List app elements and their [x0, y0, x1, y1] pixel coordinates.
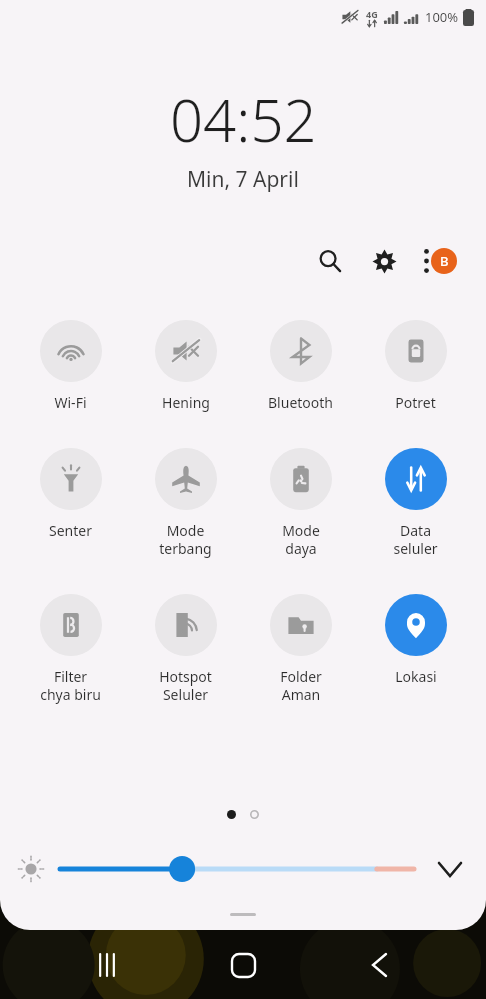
button[interactable]: Recent apps	[78, 936, 136, 994]
button[interactable]: Back	[350, 936, 408, 994]
staticText: 100%	[425, 8, 459, 26]
staticText: Hening	[162, 393, 210, 412]
button[interactable]: Mode terbang	[133, 444, 238, 562]
staticText: Senter	[49, 521, 92, 540]
staticText: Folder Aman	[280, 667, 322, 704]
staticText: Filter chya biru	[40, 667, 101, 704]
staticText: 4G	[366, 8, 378, 20]
staticText: Wi-Fi	[54, 393, 87, 412]
staticText: 04:52	[170, 80, 317, 159]
staticText: Lokasi	[395, 667, 437, 686]
button[interactable]: Expand brightness settings	[430, 849, 470, 889]
button[interactable]: Senter	[18, 444, 123, 544]
button[interactable]: Hening	[133, 316, 238, 416]
staticText: Hotspot Seluler	[159, 667, 212, 704]
button[interactable]: Folder Aman	[248, 590, 353, 708]
button[interactable]: Filter chya biru	[18, 590, 123, 708]
button[interactable]: Data seluler	[363, 444, 468, 562]
button[interactable]: Settings	[364, 241, 404, 281]
button[interactable]: Mode daya	[248, 444, 353, 562]
staticText: Min, 7 April	[187, 165, 299, 194]
staticText: Data seluler	[393, 521, 438, 558]
button[interactable]: Bluetooth	[248, 316, 353, 416]
button[interactable]: Potret	[363, 316, 468, 416]
staticText: Potret	[395, 393, 436, 412]
button[interactable]: More options, profile B	[418, 240, 460, 282]
staticText: Bluetooth	[268, 393, 333, 412]
button[interactable]: Brightness	[60, 849, 414, 889]
staticText: Mode daya	[282, 521, 320, 558]
button[interactable]: Home	[214, 936, 272, 994]
button[interactable]: Hotspot Seluler	[133, 590, 238, 708]
staticText: B	[440, 252, 449, 270]
button[interactable]: Search	[310, 241, 350, 281]
button[interactable]: Wi-Fi	[18, 316, 123, 416]
staticText: Mode terbang	[159, 521, 212, 558]
button[interactable]: Lokasi	[363, 590, 468, 690]
